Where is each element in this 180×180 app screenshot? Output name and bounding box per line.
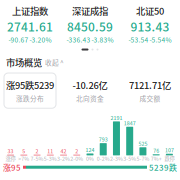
staticText: 5 [22, 147, 25, 155]
button[interactable]: 收起 ^ [45, 57, 64, 67]
button[interactable]: 7121.71亿 [120, 73, 180, 108]
staticText: -53.54 -5.54% [128, 35, 171, 45]
staticText: 793 [99, 135, 108, 143]
button[interactable]: 北证50 [120, 4, 180, 44]
staticText: 5-7% [136, 155, 149, 162]
staticText: 成交额 [139, 94, 160, 103]
staticText: 33 [8, 147, 14, 155]
staticText: 0% [86, 155, 94, 162]
staticText: 3-2% [57, 155, 70, 162]
staticText: 913.43 [130, 17, 169, 35]
staticText: 涨停 [6, 155, 16, 162]
staticText: 2-0% [70, 155, 83, 162]
staticText: 5-3% [44, 155, 57, 162]
staticText: 2741.61 [7, 17, 53, 35]
staticText: 涨95 [3, 161, 21, 173]
staticText: 7-5% [31, 155, 44, 162]
staticText: 42 [60, 147, 66, 155]
staticText: 上证指数 [12, 4, 48, 17]
staticText: 11 [47, 147, 53, 155]
staticText: 市场概览 [6, 55, 42, 69]
staticText: -10.26亿 [72, 78, 107, 92]
button[interactable]: -10.26亿 [60, 73, 120, 108]
staticText: 涨跌分布 [16, 94, 44, 103]
staticText: 涨95跌5239 [6, 78, 54, 92]
staticText: 76 [153, 146, 159, 154]
staticText: 525 [138, 139, 147, 147]
staticText: 7%+ [151, 155, 162, 162]
staticText: 5239跌 [149, 161, 177, 173]
staticText: 跌停 [164, 155, 174, 162]
staticText: 2191 [110, 114, 122, 121]
staticText: 北证50 [136, 4, 164, 17]
button[interactable]: 深证成指 [60, 4, 120, 44]
staticText: 3-5% [123, 155, 136, 162]
staticText: 收起 ^ [45, 57, 64, 67]
staticText: 北向资金 [76, 94, 104, 103]
staticText: -90.67 -3.20% [8, 35, 51, 45]
button[interactable]: 涨95跌5239 [0, 73, 60, 108]
staticText: 0-2% [97, 155, 110, 162]
staticText: 124 [85, 146, 94, 153]
staticText: 107 [165, 146, 174, 154]
staticText: >7% [18, 155, 29, 162]
staticText: 2-3% [110, 155, 123, 162]
staticText: 深证成指 [72, 4, 108, 17]
staticText: 2 [36, 147, 39, 155]
button[interactable]: 上证指数 [0, 4, 60, 44]
staticText: 8450.59 [67, 17, 113, 35]
staticText: -336.43 -3.83% [66, 35, 113, 45]
staticText: 1847 [124, 119, 136, 127]
staticText: 2 [75, 147, 78, 155]
staticText: 7121.71亿 [129, 78, 171, 92]
